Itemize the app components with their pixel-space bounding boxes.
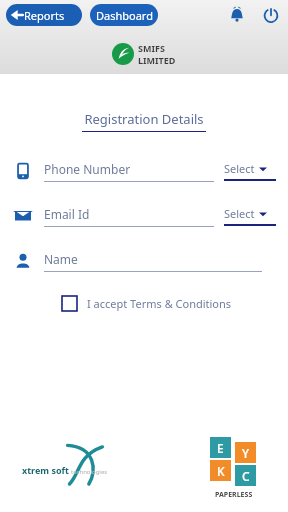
button[interactable]: Phone Number	[44, 161, 214, 182]
button[interactable]: Name	[44, 251, 262, 272]
button[interactable]: Dashboard	[90, 4, 158, 26]
staticText: Phone Number	[44, 161, 131, 177]
button[interactable]: Select	[224, 206, 276, 226]
button[interactable]: Notifications	[224, 2, 250, 28]
button[interactable]: Email Id	[44, 206, 214, 227]
staticText: Select	[224, 206, 255, 221]
button[interactable]: I accept Terms & Conditions	[62, 296, 232, 311]
staticText: Name	[44, 251, 78, 267]
staticText: technologies	[71, 468, 108, 476]
staticText: Registration Details	[84, 110, 204, 128]
staticText: Select	[224, 161, 255, 176]
staticText: K	[217, 463, 225, 479]
staticText: Dashboard	[96, 8, 153, 23]
staticText: Email Id	[44, 206, 90, 222]
staticText: C	[242, 468, 250, 484]
staticText: xtrem soft	[22, 464, 69, 476]
button[interactable]: Select	[224, 161, 276, 181]
staticText: SMIFS	[138, 42, 165, 54]
staticText: I accept Terms & Conditions	[87, 296, 232, 311]
button[interactable]: Reports	[6, 4, 82, 26]
staticText: PAPERLESS	[215, 490, 253, 500]
staticText: Reports	[24, 8, 65, 23]
staticText: LIMITED	[138, 54, 176, 66]
staticText: Y	[242, 445, 250, 461]
button[interactable]: Logout	[258, 2, 284, 28]
staticText: E	[217, 440, 224, 456]
